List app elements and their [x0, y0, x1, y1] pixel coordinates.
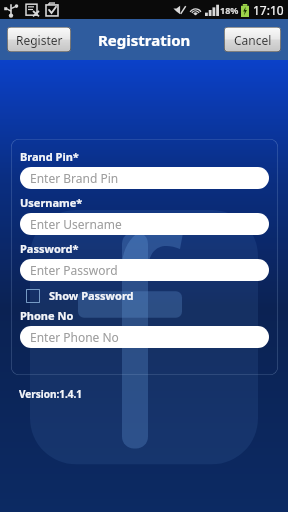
button[interactable]: Cancel: [224, 27, 281, 52]
staticText: 18%: [220, 4, 239, 16]
button[interactable]: Enter Password: [20, 259, 269, 281]
button[interactable]: Register: [7, 27, 71, 52]
staticText: Phone No: [20, 308, 74, 323]
button[interactable]: Show Password: [20, 287, 134, 304]
staticText: Enter Username: [30, 216, 122, 232]
staticText: Cancel: [234, 32, 272, 48]
staticText: Registration: [98, 30, 191, 50]
staticText: Brand Pin*: [20, 149, 79, 164]
staticText: Password*: [20, 241, 79, 256]
staticText: Register: [16, 32, 63, 48]
button[interactable]: Enter Phone No: [20, 326, 269, 348]
staticText: Enter Password: [30, 262, 118, 278]
staticText: Show Password: [49, 288, 134, 303]
staticText: Username*: [20, 195, 83, 210]
staticText: 17:10: [253, 2, 284, 18]
button[interactable]: Enter Brand Pin: [20, 167, 269, 189]
staticText: Enter Phone No: [30, 329, 119, 345]
button[interactable]: Enter Username: [20, 213, 269, 235]
staticText: Enter Brand Pin: [30, 170, 119, 186]
staticText: Version:1.4.1: [19, 387, 83, 401]
